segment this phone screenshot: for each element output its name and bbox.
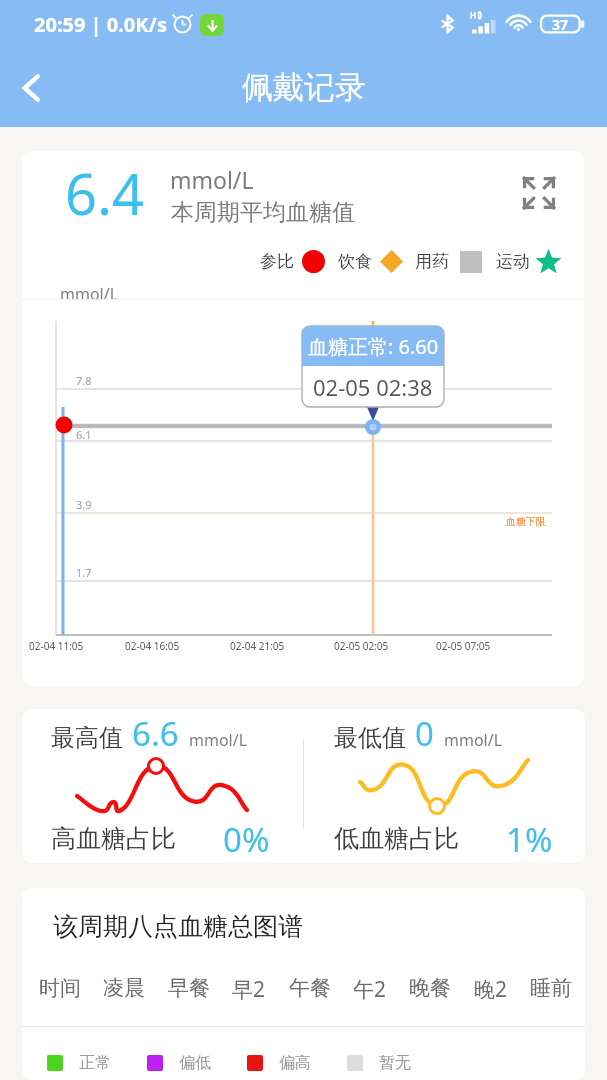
staticText: 凌晨 [103, 975, 145, 1001]
button[interactable]: 午餐 [287, 975, 333, 1001]
staticText: 7.8 [76, 373, 92, 388]
button[interactable]: 早餐 [166, 975, 212, 1001]
button[interactable]: 睡前 [528, 975, 574, 1001]
staticText: 20:59 | 0.0K/s [34, 11, 167, 38]
button[interactable]: 午2 [351, 975, 389, 1004]
staticText: 晚餐 [409, 975, 451, 1001]
staticText: 血糖正常: 6.60 [308, 333, 439, 360]
staticText: 02-04 16:05 [125, 639, 180, 653]
staticText: 饮食 [338, 251, 372, 272]
staticText: 0% [223, 817, 270, 862]
staticText: 最高值 [51, 723, 123, 753]
staticText: 高血糖占比 [51, 823, 176, 854]
staticText: 02-05 07:05 [436, 639, 491, 653]
staticText: 午餐 [289, 975, 331, 1001]
button[interactable]: 早2 [230, 975, 268, 1004]
staticText: 时间 [39, 975, 81, 1001]
staticText: 早2 [232, 975, 266, 1004]
staticText: 正常 [79, 1053, 111, 1073]
staticText: 早餐 [168, 975, 210, 1001]
staticText: 6.1 [76, 427, 92, 442]
staticText: 本周期平均血糖值 [171, 198, 355, 227]
staticText: 血糖下限 [506, 515, 546, 528]
button[interactable]: 晚餐 [407, 975, 453, 1001]
button[interactable]: Fullscreen [522, 176, 556, 210]
staticText: 佩戴记录 [242, 68, 366, 107]
staticText: 低血糖占比 [334, 823, 459, 854]
staticText: 1.7 [76, 565, 92, 580]
staticText: 最低值 [334, 723, 406, 753]
staticText: mmol/L [170, 164, 254, 195]
button[interactable]: 偏低 [147, 1053, 211, 1073]
button[interactable]: Back [0, 56, 64, 120]
staticText: 02-05 02:05 [334, 639, 389, 653]
staticText: 37 [552, 15, 569, 34]
staticText: 该周期八点血糖总图谱 [53, 911, 303, 942]
staticText: 运动 [496, 251, 530, 272]
staticText: 02-04 21:05 [230, 639, 285, 653]
staticText: 参比 [260, 251, 294, 272]
button[interactable]: 暂无 [347, 1053, 411, 1073]
staticText: 02-04 11:05 [29, 639, 84, 653]
staticText: 02-05 02:38 [313, 372, 433, 402]
staticText: 0 [415, 711, 434, 756]
staticText: 睡前 [530, 975, 572, 1001]
staticText: 用药 [415, 251, 449, 272]
button[interactable]: 正常 [47, 1053, 111, 1073]
staticText: mmol/L [189, 729, 248, 751]
staticText: 偏低 [179, 1053, 211, 1073]
button[interactable]: 偏高 [247, 1053, 311, 1073]
button[interactable]: 时间 [37, 975, 83, 1001]
staticText: 6.4 [65, 155, 145, 231]
staticText: 3.9 [76, 497, 92, 512]
staticText: 晚2 [474, 975, 508, 1004]
staticText: 偏高 [279, 1053, 311, 1073]
button[interactable]: 凌晨 [101, 975, 147, 1001]
staticText: 午2 [353, 975, 387, 1004]
staticText: mmol/L [444, 729, 503, 751]
button[interactable]: 晚2 [472, 975, 510, 1004]
staticText: 6.6 [132, 711, 179, 756]
staticText: mmol/L [60, 283, 119, 305]
staticText: 暂无 [379, 1053, 411, 1073]
staticText: 1% [506, 817, 553, 862]
